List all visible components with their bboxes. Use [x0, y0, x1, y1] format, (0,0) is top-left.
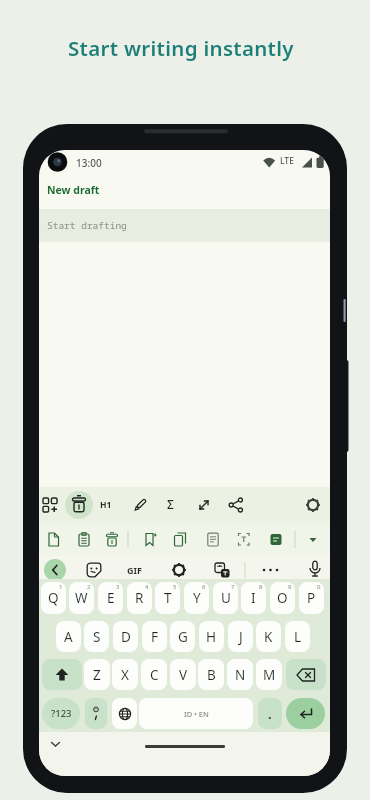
button[interactable] [86, 562, 102, 578]
button[interactable] [214, 562, 230, 578]
button[interactable]: E [98, 582, 123, 614]
button[interactable]: W [69, 582, 94, 614]
button[interactable]: B [198, 659, 224, 690]
button[interactable] [308, 536, 318, 544]
staticText: E [107, 589, 115, 607]
button[interactable]: R [127, 582, 152, 614]
staticText: O [277, 589, 288, 607]
staticText: 3 [116, 583, 120, 591]
button[interactable] [47, 532, 61, 547]
button[interactable] [173, 532, 187, 547]
button[interactable]: G [170, 621, 195, 652]
button[interactable] [269, 532, 283, 547]
staticText: V [179, 666, 188, 684]
staticText: ID • EN [184, 709, 209, 719]
button[interactable]: I [241, 582, 266, 614]
button[interactable]: Σ [167, 496, 174, 512]
button[interactable] [105, 532, 119, 547]
button[interactable]: L [285, 621, 310, 652]
button[interactable] [237, 532, 251, 547]
button[interactable]: H [199, 621, 224, 652]
button[interactable]: T [155, 582, 180, 614]
button[interactable]: M [256, 659, 282, 690]
button[interactable]: GIF [127, 564, 142, 576]
staticText: C [150, 666, 159, 684]
button[interactable]: Z [84, 659, 110, 690]
button[interactable] [65, 491, 93, 519]
button[interactable] [286, 698, 325, 729]
staticText: R [135, 589, 144, 607]
button[interactable] [44, 559, 66, 581]
button[interactable] [286, 659, 326, 690]
staticText: N [235, 666, 246, 684]
button[interactable]: ID • EN [139, 698, 253, 729]
button[interactable] [261, 567, 281, 573]
staticText: ?123 [51, 707, 72, 720]
button[interactable]: H1 [100, 499, 112, 511]
button[interactable] [171, 562, 187, 578]
button[interactable]: X [112, 659, 138, 690]
staticText: H [206, 628, 217, 646]
staticText: J [239, 628, 243, 646]
button[interactable] [305, 497, 321, 513]
staticText: X [121, 666, 129, 684]
button[interactable] [307, 560, 323, 578]
staticText: 6 [202, 583, 206, 591]
staticText: 1 [59, 583, 63, 591]
button[interactable]: A [56, 621, 81, 652]
button[interactable] [50, 741, 61, 748]
staticText: Start drafting [47, 219, 127, 232]
button[interactable]: ?123 [42, 698, 80, 729]
staticText: Start writing instantly [68, 34, 294, 62]
button[interactable] [143, 532, 157, 547]
staticText: P [307, 589, 316, 607]
staticText: U [221, 589, 231, 607]
staticText: G [178, 628, 188, 646]
button[interactable] [196, 497, 212, 513]
button[interactable]: Start drafting [39, 209, 330, 242]
staticText: S [93, 628, 101, 646]
button[interactable]: K [256, 621, 281, 652]
button[interactable]: Q [41, 582, 66, 614]
staticText: 8 [259, 583, 263, 591]
staticText: F [151, 628, 159, 646]
button[interactable] [42, 659, 82, 690]
staticText: 9 [288, 583, 292, 591]
button[interactable]: S [84, 621, 109, 652]
staticText: A [64, 628, 73, 646]
button[interactable]: . [258, 698, 282, 729]
staticText: Q [48, 589, 59, 607]
button[interactable] [77, 532, 91, 547]
button[interactable]: D [113, 621, 138, 652]
button[interactable] [85, 698, 107, 729]
staticText: I [251, 589, 256, 607]
staticText: B [207, 666, 216, 684]
button[interactable] [132, 497, 148, 513]
button[interactable]: N [227, 659, 253, 690]
button[interactable]: P [299, 582, 324, 614]
button[interactable] [228, 497, 244, 513]
button[interactable]: O [270, 582, 295, 614]
button[interactable]: C [141, 659, 167, 690]
staticText: M [263, 666, 276, 684]
button[interactable] [42, 497, 58, 513]
button[interactable]: J [228, 621, 253, 652]
staticText: K [264, 628, 273, 646]
staticText: W [75, 589, 88, 607]
button[interactable]: U [213, 582, 238, 614]
button[interactable]: F [142, 621, 167, 652]
staticText: Y [193, 589, 201, 607]
staticText: Z [93, 666, 101, 684]
button[interactable]: V [170, 659, 196, 690]
staticText: D [121, 628, 131, 646]
staticText: L [294, 628, 302, 646]
staticText: 4 [145, 583, 149, 591]
staticText: New draft [47, 183, 100, 197]
staticText: LTE [280, 155, 294, 167]
staticText: 2 [87, 583, 91, 591]
staticText: 7 [231, 583, 235, 591]
button[interactable]: Y [184, 582, 209, 614]
button[interactable] [112, 698, 137, 729]
staticText: 13:00 [76, 156, 102, 170]
button[interactable] [206, 532, 220, 547]
